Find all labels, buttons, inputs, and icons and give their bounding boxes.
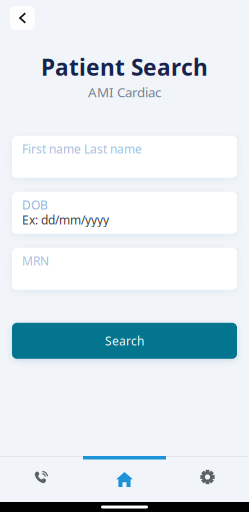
button[interactable]: DOB [12,192,237,234]
staticText: MRN [22,253,49,269]
staticText: First name Last name [22,141,142,157]
staticText: AMI Cardiac [88,83,161,101]
staticText: Search [105,333,144,349]
button[interactable]: MRN [12,248,237,290]
staticText: DOB [22,197,48,213]
button[interactable]: Settings [166,456,249,502]
button[interactable]: Back [10,6,35,30]
button[interactable]: Search [12,323,237,359]
button[interactable]: Calls [0,456,83,502]
staticText: Ex: dd/mm/yyyy [22,212,109,228]
button[interactable]: First name Last name [12,136,237,178]
button[interactable]: Home [83,456,166,502]
staticText: Patient Search [41,52,208,82]
